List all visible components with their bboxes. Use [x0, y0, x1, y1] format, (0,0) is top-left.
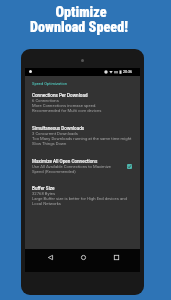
- button[interactable]: Maximize All Open Connections: [32, 159, 132, 174]
- staticText: Simultaneous Downloads: [32, 126, 85, 131]
- button[interactable]: Home: [74, 248, 92, 266]
- staticText: Recommended for Multi core devices: [32, 108, 102, 113]
- button[interactable]: Connections Per Download: [32, 93, 132, 113]
- staticText: Maximize All Open Connections: [32, 159, 98, 164]
- staticText: Connections Per Download: [32, 93, 88, 98]
- staticText: Too Many Downloads running at the same t…: [32, 136, 132, 141]
- staticText: Optimize: [55, 4, 107, 21]
- staticText: 32768 Bytes: [32, 191, 56, 196]
- staticText: Use All Available Connections to Maximiz…: [32, 164, 111, 169]
- staticText: Local Networks: [32, 201, 61, 206]
- staticText: Large Buffer size is better for High End…: [32, 196, 127, 201]
- staticText: More Connections increase speed.: [32, 103, 97, 108]
- staticText: Download Speed!: [30, 19, 128, 36]
- button[interactable]: Recent apps: [107, 248, 125, 266]
- staticText: Buffer Size: [32, 186, 55, 191]
- staticText: 3 Concurrent Downloads: [32, 131, 78, 136]
- staticText: Speed (Recommended): [32, 169, 76, 174]
- staticText: 6 Connections: [32, 98, 59, 103]
- button[interactable]: Back: [41, 248, 59, 266]
- staticText: 20:36: [123, 70, 133, 74]
- staticText: Speed Optimization: [32, 81, 68, 86]
- button[interactable]: Simultaneous Downloads: [32, 126, 132, 146]
- staticText: Slow Things Down: [32, 141, 67, 146]
- button[interactable]: Buffer Size: [32, 186, 132, 206]
